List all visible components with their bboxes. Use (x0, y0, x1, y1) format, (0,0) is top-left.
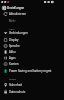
button[interactable]: Sprache (0, 43, 64, 49)
staticText: Sicherheit (9, 83, 23, 87)
staticText: Display (9, 38, 19, 42)
button[interactable]: Settings (0, 4, 64, 12)
button[interactable]: Akku (0, 49, 64, 55)
staticText: Netz (9, 27, 15, 30)
staticText: Verbindungen (9, 31, 28, 35)
button[interactable]: Power Saving and battery mgmt (0, 68, 64, 74)
button[interactable]: Datenschutz (0, 89, 64, 95)
button[interactable]: Konten (0, 61, 64, 67)
button[interactable]: Sicherheit (0, 82, 64, 88)
button[interactable]: Mehr (0, 18, 64, 24)
button[interactable]: Verbindungen (0, 30, 64, 36)
staticText: Sprache (9, 44, 20, 48)
staticText: Konto (9, 77, 16, 80)
button[interactable]: Display (0, 37, 64, 43)
staticText: Datenschutz (9, 90, 26, 94)
button[interactable]: Apps (0, 55, 64, 61)
button[interactable]: Aktualisieren (0, 11, 64, 17)
staticText: Konten (9, 62, 19, 66)
staticText: Apps (9, 56, 16, 60)
staticText: Aktualisieren (9, 12, 27, 16)
staticText: Mehr (9, 19, 16, 23)
staticText: Power Saving and battery mgmt (9, 69, 52, 73)
staticText: Einstellungen (7, 6, 25, 10)
other: Settings (0, 4, 7, 12)
staticText: Akku (9, 50, 16, 54)
